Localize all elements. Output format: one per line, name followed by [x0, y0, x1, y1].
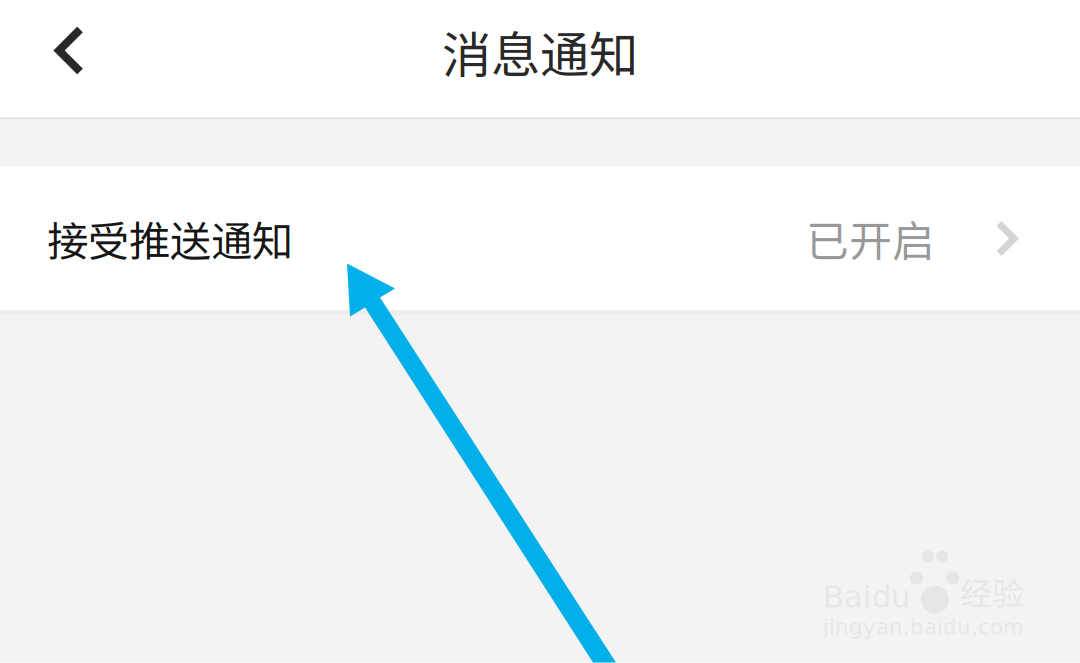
staticText: 接受推送通知 [47, 209, 293, 268]
staticText: 消息通知 [442, 16, 638, 87]
staticText: jingyan.baidu.com [823, 615, 1024, 639]
staticText: Baidu [823, 579, 910, 615]
button[interactable]: 接受推送通知 [0, 166, 1080, 310]
staticText: 经验 [960, 568, 1024, 615]
button[interactable]: Back [0, 0, 109, 117]
staticText: 已开启 [806, 208, 935, 269]
